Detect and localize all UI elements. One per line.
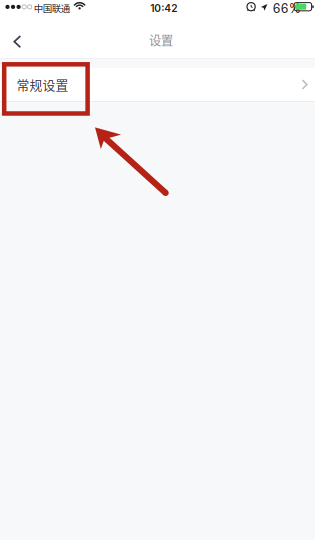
button[interactable]: 常规设置 [0, 68, 315, 101]
staticText: 常规设置 [16, 75, 68, 94]
staticText: 66% [273, 1, 301, 16]
staticText: 设置 [149, 31, 173, 49]
staticText: 10:42 [150, 2, 177, 14]
button[interactable]: Back [0, 20, 36, 58]
staticText: 中国联通 [34, 1, 70, 15]
